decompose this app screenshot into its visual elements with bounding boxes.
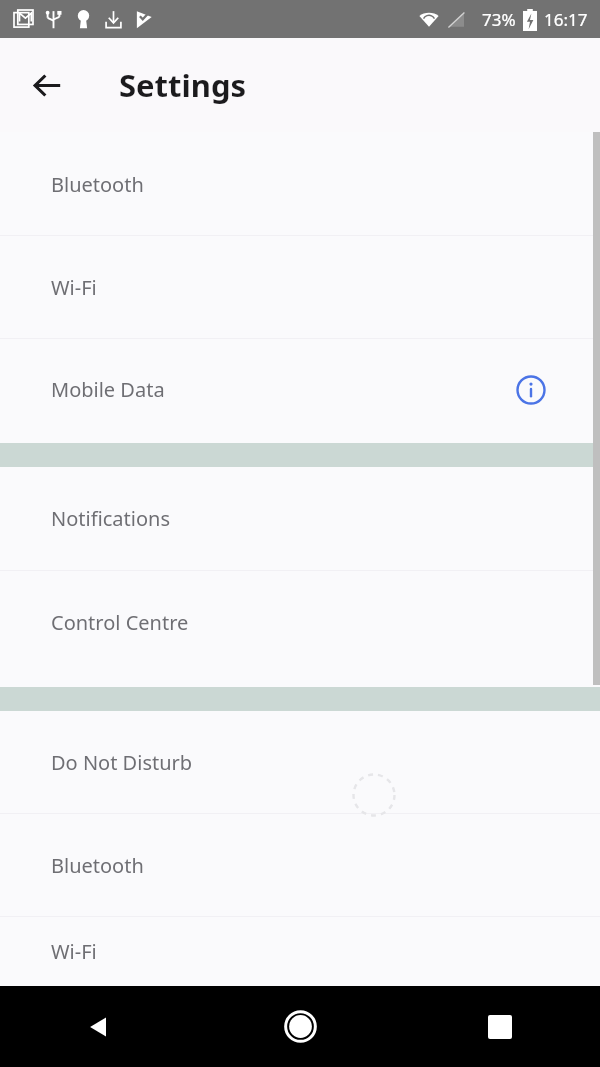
staticText: Notifications bbox=[51, 505, 170, 532]
button[interactable]: Wi-Fi bbox=[0, 917, 600, 986]
button[interactable]: Bluetooth bbox=[0, 814, 600, 916]
staticText: Wi-Fi bbox=[51, 938, 97, 965]
button[interactable]: Bluetooth bbox=[0, 133, 600, 235]
button[interactable]: Mobile Data bbox=[0, 339, 600, 440]
staticText: 73% bbox=[482, 8, 516, 31]
button[interactable]: Wi-Fi bbox=[0, 236, 600, 338]
staticText: Control Centre bbox=[51, 609, 189, 636]
button[interactable]: Back bbox=[0, 986, 200, 1067]
staticText: Bluetooth bbox=[51, 852, 144, 879]
button[interactable]: Back bbox=[21, 59, 73, 111]
button[interactable]: Recents bbox=[400, 986, 600, 1067]
staticText: Mobile Data bbox=[51, 376, 165, 403]
button[interactable]: Control Centre bbox=[0, 571, 600, 674]
staticText: 16:17 bbox=[544, 8, 588, 31]
button[interactable]: Info bbox=[513, 372, 549, 408]
button[interactable]: Home bbox=[200, 986, 400, 1067]
staticText: Wi-Fi bbox=[51, 274, 97, 301]
staticText: Bluetooth bbox=[51, 171, 144, 198]
staticText: Do Not Disturb bbox=[51, 749, 193, 776]
button[interactable]: Do Not Disturb bbox=[0, 711, 600, 813]
button[interactable]: Notifications bbox=[0, 467, 600, 570]
staticText: Settings bbox=[119, 64, 247, 106]
